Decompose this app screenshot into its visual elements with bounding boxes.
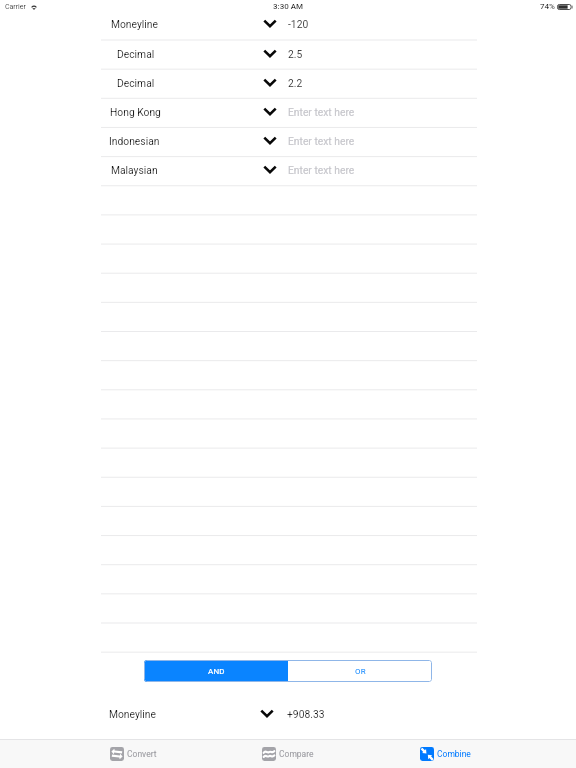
staticText: Enter text here — [288, 164, 355, 176]
button[interactable]: Convert — [94, 740, 172, 768]
staticText: Moneyline — [109, 708, 156, 720]
staticText: +908.33 — [287, 708, 325, 720]
button[interactable]: Indonesian — [101, 127, 477, 156]
staticText: Convert — [127, 749, 157, 759]
staticText: OR — [355, 667, 366, 676]
staticText: Moneyline — [111, 18, 158, 30]
button[interactable]: Decimal — [101, 40, 477, 69]
button[interactable]: Combine — [406, 740, 484, 768]
button[interactable]: Malaysian — [101, 156, 477, 185]
button[interactable]: AND — [144, 660, 288, 682]
staticText: Combine — [437, 749, 471, 759]
staticText: 3:30 AM — [273, 2, 304, 11]
staticText: Compare — [279, 749, 314, 759]
staticText: 74% — [540, 2, 555, 11]
staticText: -120 — [288, 18, 309, 30]
staticText: Malaysian — [111, 164, 158, 176]
staticText: Decimal — [117, 48, 155, 60]
button[interactable]: OR — [288, 660, 432, 682]
button[interactable]: Hong Kong — [101, 98, 477, 127]
staticText: 2.2 — [288, 77, 303, 89]
staticText: Carrier — [5, 3, 26, 11]
staticText: Enter text here — [288, 106, 355, 118]
staticText: Decimal — [117, 77, 155, 89]
button[interactable]: Compare — [249, 740, 327, 768]
button[interactable]: Moneyline — [101, 699, 477, 728]
staticText: Hong Kong — [110, 106, 161, 118]
button[interactable]: Moneyline — [101, 10, 477, 39]
staticText: Indonesian — [109, 135, 160, 147]
staticText: 2.5 — [288, 48, 303, 60]
staticText: Enter text here — [288, 135, 355, 147]
staticText: AND — [208, 667, 225, 676]
button[interactable]: Decimal — [101, 69, 477, 98]
